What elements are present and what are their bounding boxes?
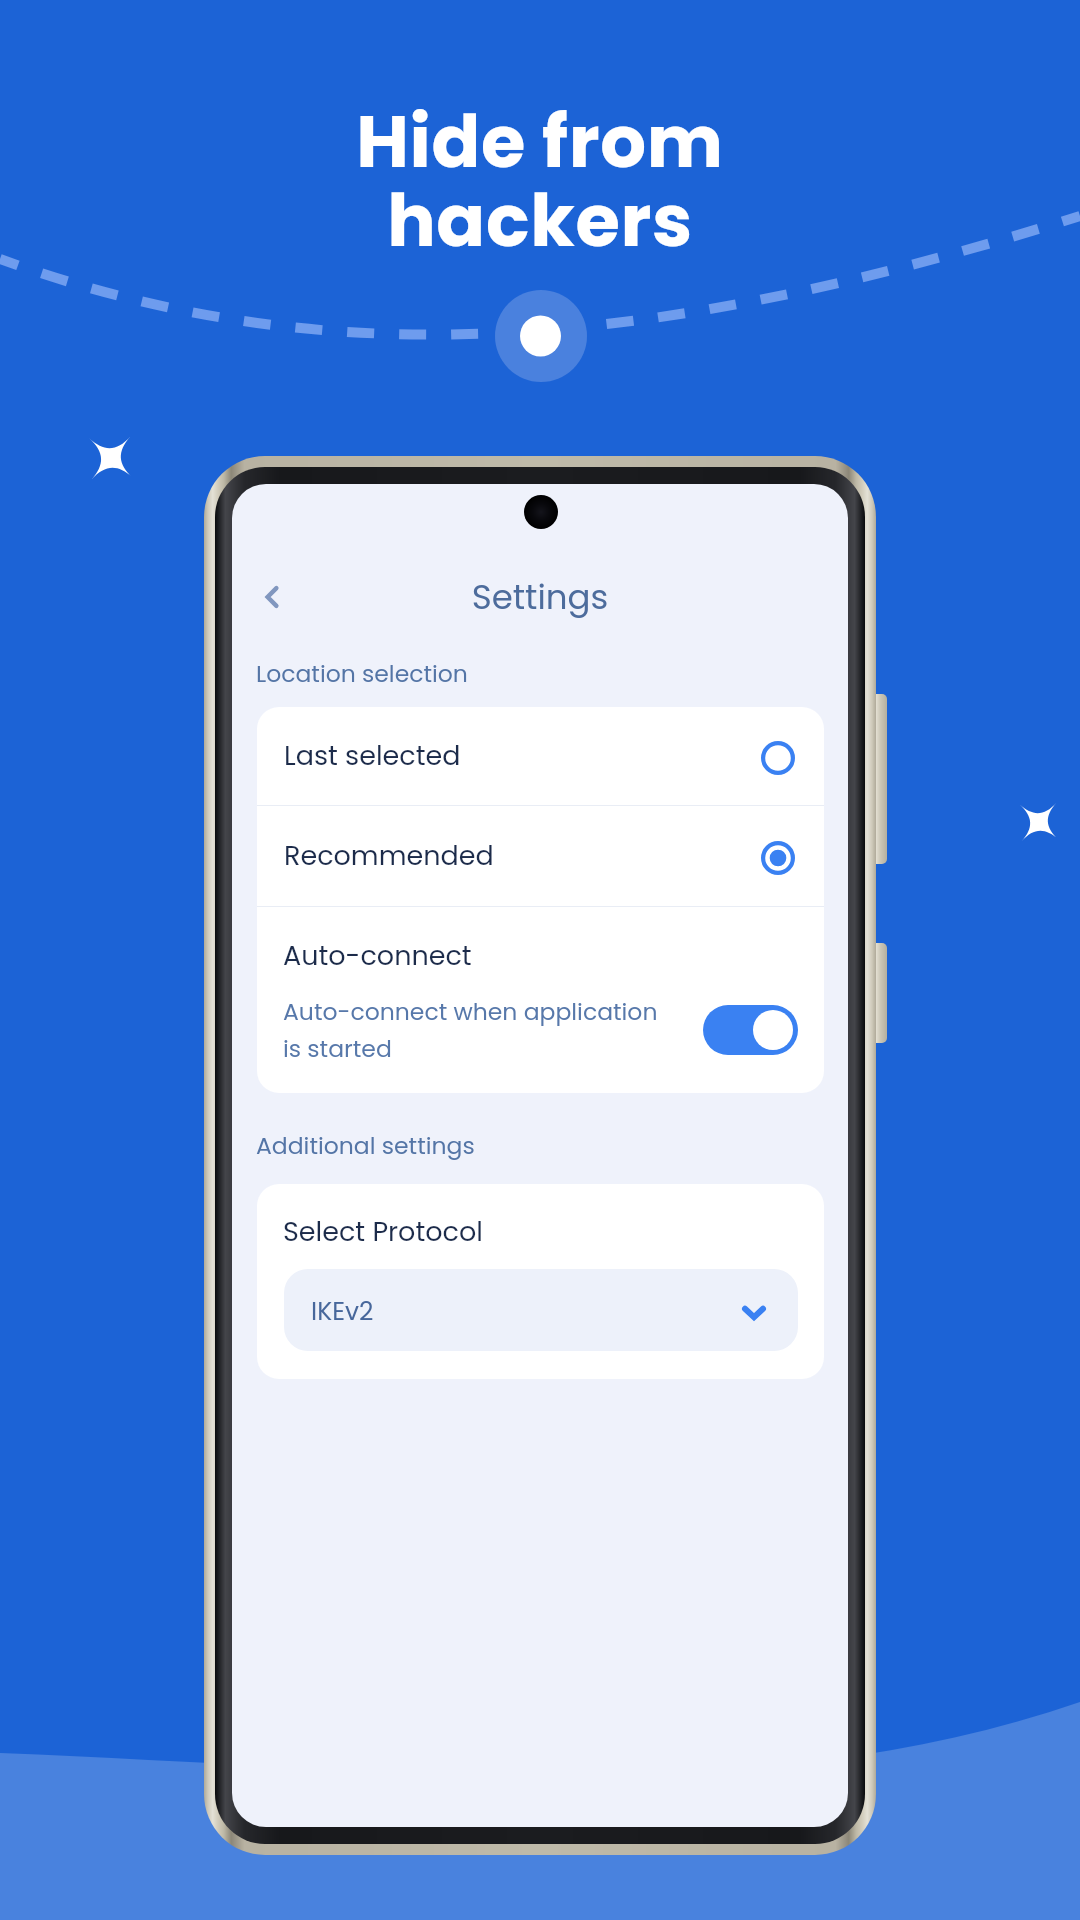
button[interactable]: Auto-connect toggle xyxy=(703,1005,798,1055)
staticText: Hide from hackers xyxy=(0,91,1080,271)
staticText: Settings xyxy=(232,573,848,621)
button[interactable]: Back xyxy=(245,570,299,624)
staticText: Location selection xyxy=(256,657,468,690)
staticText: Select Protocol xyxy=(283,1213,483,1251)
staticText: Last selected xyxy=(284,737,461,775)
button[interactable]: IKEv2 xyxy=(284,1269,798,1351)
staticText: Auto-connect when application is started xyxy=(283,995,658,1065)
staticText: Auto-connect xyxy=(283,937,472,975)
staticText: Additional settings xyxy=(256,1129,475,1162)
button[interactable]: Recommended xyxy=(257,806,824,906)
staticText: IKEv2 xyxy=(311,1294,374,1329)
staticText: Recommended xyxy=(284,837,494,875)
button[interactable]: Last selected xyxy=(257,707,824,805)
